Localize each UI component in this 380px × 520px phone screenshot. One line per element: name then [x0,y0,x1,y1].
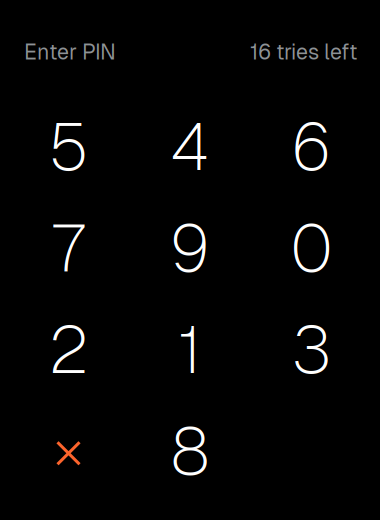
button[interactable]: 3 [251,299,372,400]
staticText: 4 [170,104,209,189]
button[interactable]: 6 [251,96,372,197]
button[interactable]: 0 [251,197,372,299]
button[interactable]: 4 [129,96,251,197]
staticText: 0 [290,206,332,291]
button[interactable]: 2 [8,299,129,400]
staticText: 5 [48,104,88,189]
button[interactable]: 7 [8,197,129,299]
staticText: Enter PIN [24,38,116,66]
staticText: 8 [170,409,209,494]
button[interactable]: 5 [8,96,129,197]
button[interactable]: 8 [129,400,251,502]
staticText: 16 tries left [250,38,357,66]
staticText: 2 [48,307,88,392]
button[interactable]: 1 [129,299,251,400]
button[interactable]: 9 [129,197,251,299]
staticText: 3 [291,307,331,392]
staticText: 9 [169,206,210,291]
staticText: 7 [52,206,85,291]
staticText: 6 [291,104,332,189]
button[interactable]: Delete [8,400,129,502]
staticText: 1 [178,307,202,392]
